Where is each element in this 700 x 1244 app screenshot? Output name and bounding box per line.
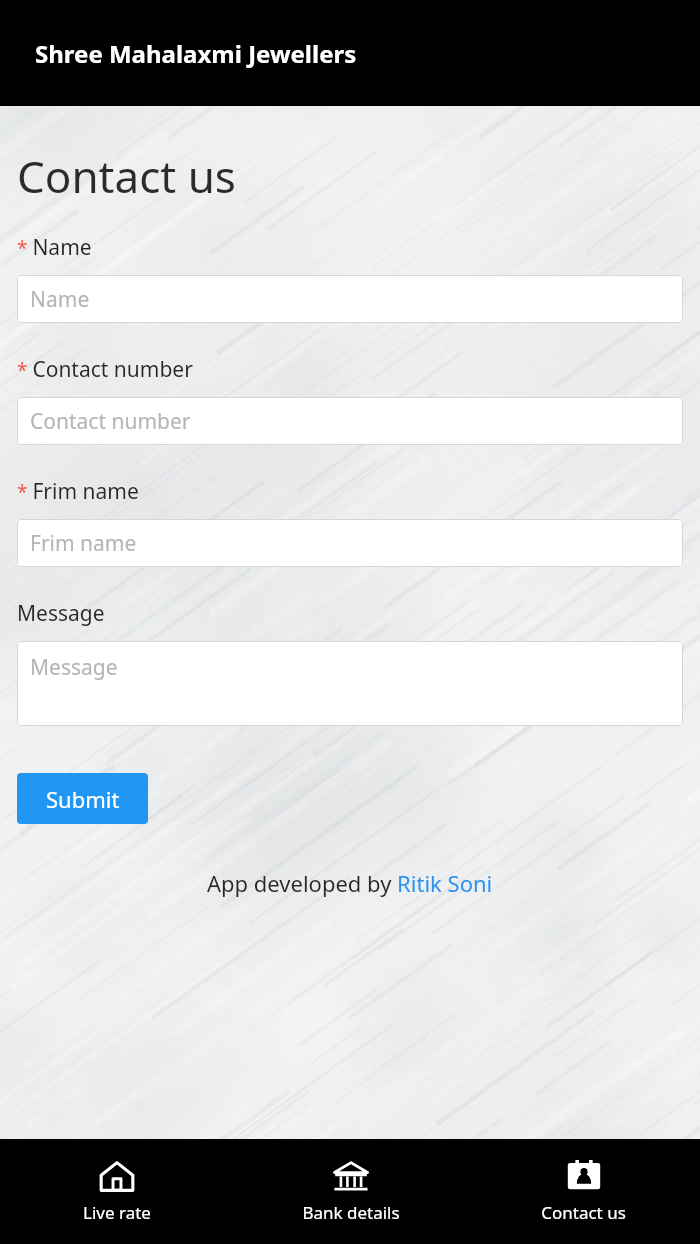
button[interactable]: Message bbox=[17, 641, 683, 726]
button[interactable]: Frim name bbox=[17, 519, 683, 567]
staticText: Message bbox=[30, 653, 118, 682]
staticText: App developed by Ritik Soni bbox=[207, 868, 493, 898]
staticText: Shree Mahalaxmi Jewellers bbox=[35, 37, 357, 70]
staticText: Contact us bbox=[17, 146, 236, 206]
staticText: Name bbox=[30, 285, 90, 314]
staticText: Frim name bbox=[30, 529, 137, 558]
staticText: Live rate bbox=[83, 1201, 151, 1224]
other: Live rate bbox=[99, 1160, 135, 1193]
button[interactable]: Contact number bbox=[17, 397, 683, 445]
button[interactable]: Name bbox=[17, 275, 683, 323]
staticText: Bank details bbox=[302, 1201, 400, 1224]
staticText: Contact number bbox=[30, 407, 191, 436]
staticText: * Name bbox=[17, 233, 92, 262]
button[interactable]: Submit bbox=[17, 773, 148, 824]
staticText: * Frim name bbox=[17, 477, 139, 506]
button[interactable]: Live rate bbox=[0, 1150, 234, 1234]
button[interactable]: Bank details bbox=[234, 1150, 467, 1234]
other: Contact us bbox=[566, 1160, 602, 1193]
other: Bank details bbox=[333, 1160, 369, 1193]
staticText: Submit bbox=[46, 784, 120, 814]
button[interactable]: Contact us bbox=[467, 1150, 700, 1234]
staticText: Contact us bbox=[541, 1201, 626, 1224]
staticText: Message bbox=[17, 599, 105, 628]
staticText: * Contact number bbox=[17, 355, 193, 384]
